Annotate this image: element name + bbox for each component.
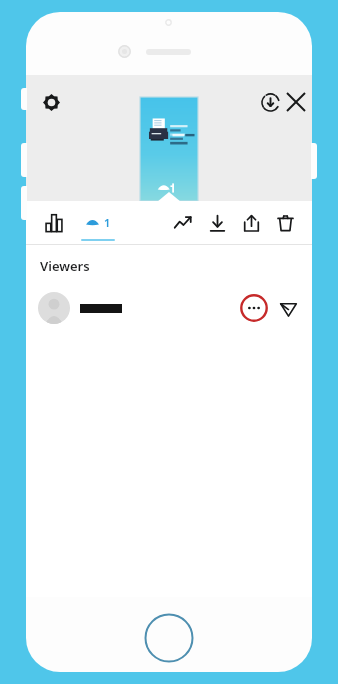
button[interactable]: Share [234,206,268,240]
button[interactable] [140,97,198,201]
button[interactable]: More options [240,294,268,322]
button[interactable]: Insights [34,201,74,244]
button[interactable]: Settings [36,87,66,117]
button[interactable]: Delete [268,206,302,240]
button[interactable]: Save [255,87,285,117]
button[interactable]: Download [200,206,234,240]
button[interactable]: More options [26,285,312,331]
staticText: Viewers [40,257,90,275]
button[interactable]: 1 [74,201,122,244]
button[interactable]: Close [280,86,312,118]
button[interactable]: Promote [166,206,200,240]
button[interactable]: Send message [274,294,302,322]
staticText: 1 [104,215,111,230]
